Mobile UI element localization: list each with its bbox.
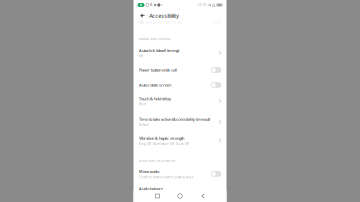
staticText: Combine channels when playing audio: [139, 175, 194, 179]
staticText: Auto-rotate screen: [139, 82, 171, 88]
staticText: AUDIO AND ON-SCREEN TEXT: [139, 159, 176, 162]
button[interactable]: Mono audio: [139, 169, 221, 179]
button[interactable]: Home: [170, 190, 190, 202]
button[interactable]: Back: [193, 190, 213, 202]
staticText: 12:15: [198, 3, 207, 7]
staticText: Search: [213, 21, 221, 24]
button[interactable]: Recent apps: [147, 190, 167, 202]
staticText: INTERACTION CONTROLS: [139, 37, 170, 41]
staticText: Touch & hold delay: [139, 96, 171, 101]
staticText: Mono audio: [139, 169, 159, 174]
staticText: Accessibility: [149, 12, 179, 19]
button[interactable]: Autoclick (dwell timing): [139, 48, 221, 58]
staticText: Vibration & haptic strength: [139, 135, 184, 141]
button[interactable]: Auto-rotate screen: [139, 82, 221, 88]
button[interactable]: Touch & hold delay: [139, 96, 221, 106]
button[interactable]: Vibration & haptic strength: [139, 135, 221, 146]
staticText: Ring Off, Notification Off, Touch Off: [139, 142, 189, 146]
staticText: Audio balance: [139, 186, 163, 191]
staticText: M: [150, 3, 153, 7]
staticText: Default: [139, 123, 149, 127]
staticText: Autoclick (dwell timing): [139, 48, 179, 53]
button[interactable]: Time to take action (Accessibility timeo…: [139, 117, 221, 127]
staticText: Make your phone easier to use: [139, 21, 182, 24]
staticText: Time to take action (Accessibility timeo…: [139, 117, 210, 122]
staticText: Short: [139, 102, 146, 106]
staticText: Power button ends call: [139, 67, 177, 73]
button[interactable]: Back: [139, 12, 146, 20]
staticText: Off: [139, 54, 143, 58]
button[interactable]: Power button ends call: [139, 67, 221, 73]
button[interactable]: Audio balance: [139, 186, 221, 191]
